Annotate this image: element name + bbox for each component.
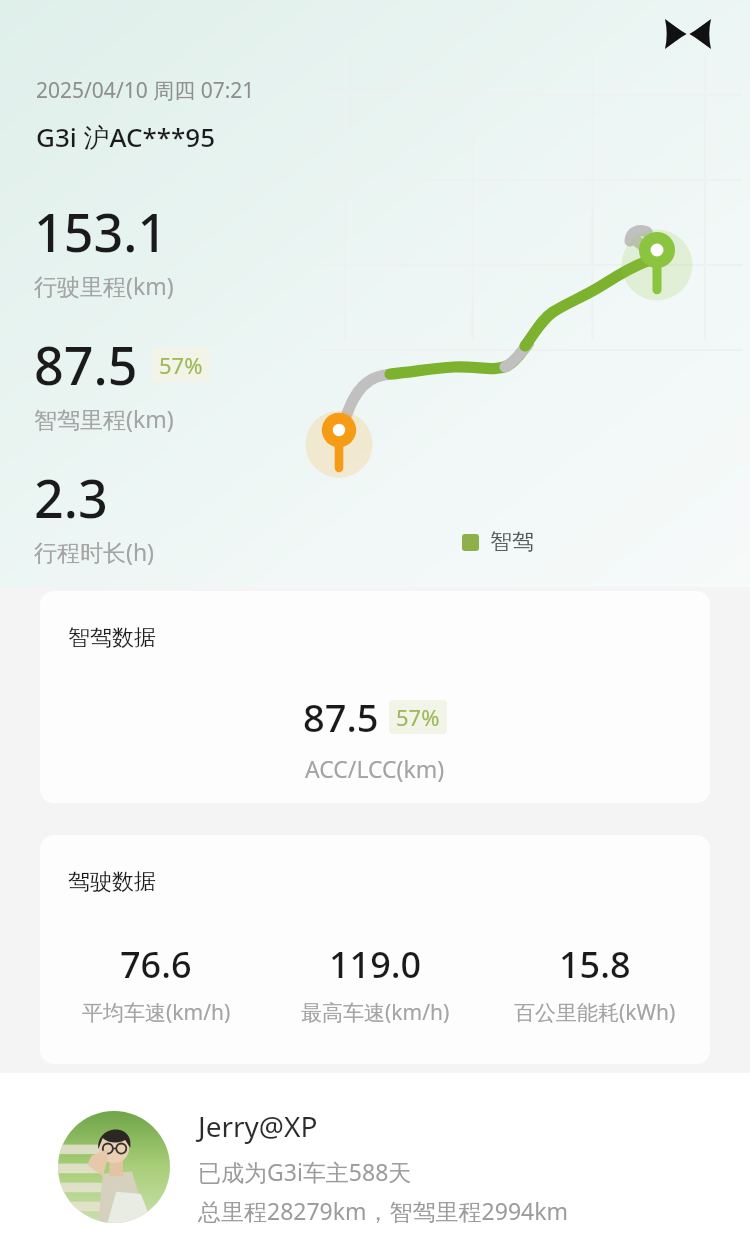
staticText: 总里程28279km，智驾里程2994km (198, 1195, 568, 1226)
staticText: 2.3 (34, 462, 108, 533)
staticText: 76.6 (120, 940, 192, 989)
staticText: 57% (159, 350, 203, 380)
staticText: ACC/LCC(km) (305, 753, 445, 784)
staticText: 智驾 (490, 528, 534, 556)
staticText: 最高车速(km/h) (301, 998, 450, 1027)
staticText: 行驶里程(km) (34, 270, 174, 301)
staticText: 119.0 (329, 940, 422, 989)
staticText: 87.5 (34, 329, 138, 400)
staticText: 驾驶数据 (68, 868, 156, 896)
staticText: 153.1 (34, 196, 168, 267)
button[interactable]: Jerry@XP (0, 1073, 750, 1260)
staticText: 智驾里程(km) (34, 403, 174, 434)
button[interactable]: 驾驶数据 (40, 835, 710, 1064)
staticText: 百公里能耗(kWh) (514, 998, 676, 1027)
staticText: G3i 沪AC***95 (36, 119, 216, 155)
staticText: 57% (396, 702, 440, 732)
staticText: 已成为G3i车主588天 (198, 1156, 412, 1187)
staticText: 平均车速(km/h) (82, 998, 231, 1027)
staticText: 2025/04/10 周四 07:21 (36, 76, 255, 105)
button[interactable]: XPeng logo (662, 14, 714, 54)
staticText: 87.5 (303, 691, 379, 743)
staticText: Jerry@XP (198, 1107, 318, 1145)
staticText: 15.8 (559, 940, 631, 989)
staticText: 智驾数据 (68, 624, 156, 652)
button[interactable]: 智驾数据 (40, 591, 710, 803)
staticText: 行程时长(h) (34, 536, 155, 567)
